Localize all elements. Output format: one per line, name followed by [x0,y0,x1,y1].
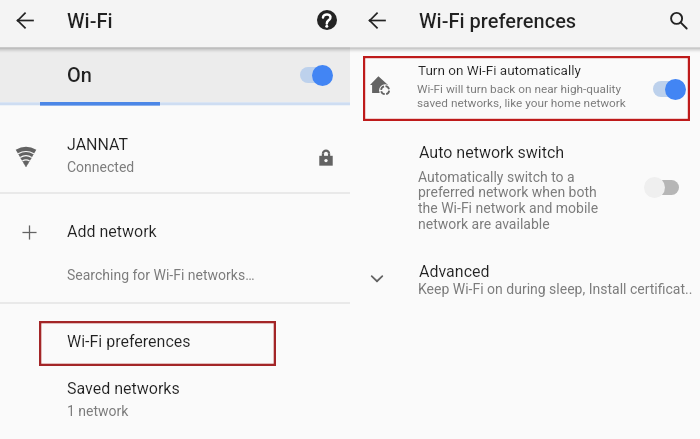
staticText: Add network [67,222,157,241]
staticText: Wi-Fi will turn back on near high-qualit… [417,82,626,124]
staticText: Searching for Wi-Fi networks… [67,267,255,283]
staticText: Automatically switch to a preferred netw… [418,169,599,233]
staticText: Saved networks [67,379,180,398]
staticText: Wi-Fi preferences [419,9,577,32]
button[interactable] [0,368,350,428]
staticText: JANNAT [67,135,129,154]
button[interactable] [0,193,350,249]
button[interactable] [0,302,350,368]
staticText: Advanced [419,262,490,281]
staticText: On [67,63,92,86]
button[interactable] [350,254,700,310]
staticText: Wi-Fi [67,9,113,32]
button[interactable] [0,108,350,192]
button[interactable] [350,56,700,122]
staticText: 1 network [67,403,129,419]
button[interactable] [0,47,350,102]
button[interactable] [350,136,700,244]
staticText: Auto network switch [419,143,565,162]
staticText: Keep Wi-Fi on during sleep, Install cert… [418,281,693,297]
button[interactable]: Help [313,6,341,34]
button[interactable]: Back [363,7,390,34]
staticText: Connected [67,159,135,175]
staticText: Turn on Wi-Fi automatically [418,62,581,78]
staticText: Wi-Fi preferences [67,332,191,351]
button[interactable]: Search [664,6,692,34]
button[interactable]: Back [11,7,38,34]
